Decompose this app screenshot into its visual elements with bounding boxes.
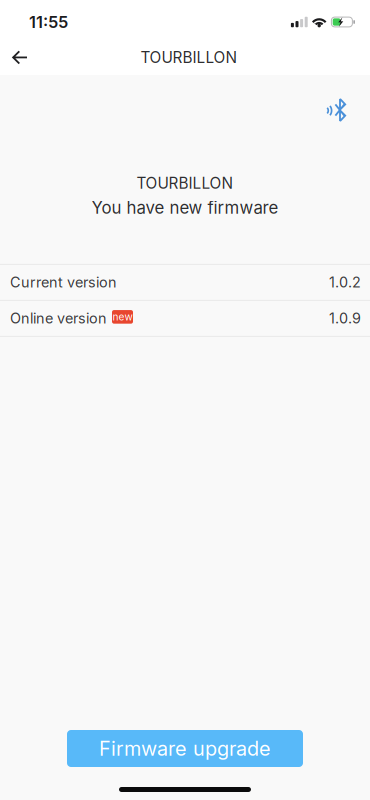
staticText: 1.0.9 — [329, 310, 361, 327]
staticText: 1.0.2 — [329, 274, 361, 291]
staticText: Current version — [10, 274, 117, 291]
staticText: TOURBILLON — [140, 48, 237, 67]
button[interactable]: Firmware upgrade — [67, 730, 303, 767]
staticText: Online version — [10, 310, 107, 327]
staticText: TOURBILLON — [136, 174, 233, 193]
staticText: new — [112, 311, 132, 323]
staticText: You have new firmware — [91, 198, 278, 218]
button[interactable]: Back — [0, 40, 44, 78]
staticText: Firmware upgrade — [99, 736, 271, 760]
staticText: 11:55 — [29, 12, 68, 32]
